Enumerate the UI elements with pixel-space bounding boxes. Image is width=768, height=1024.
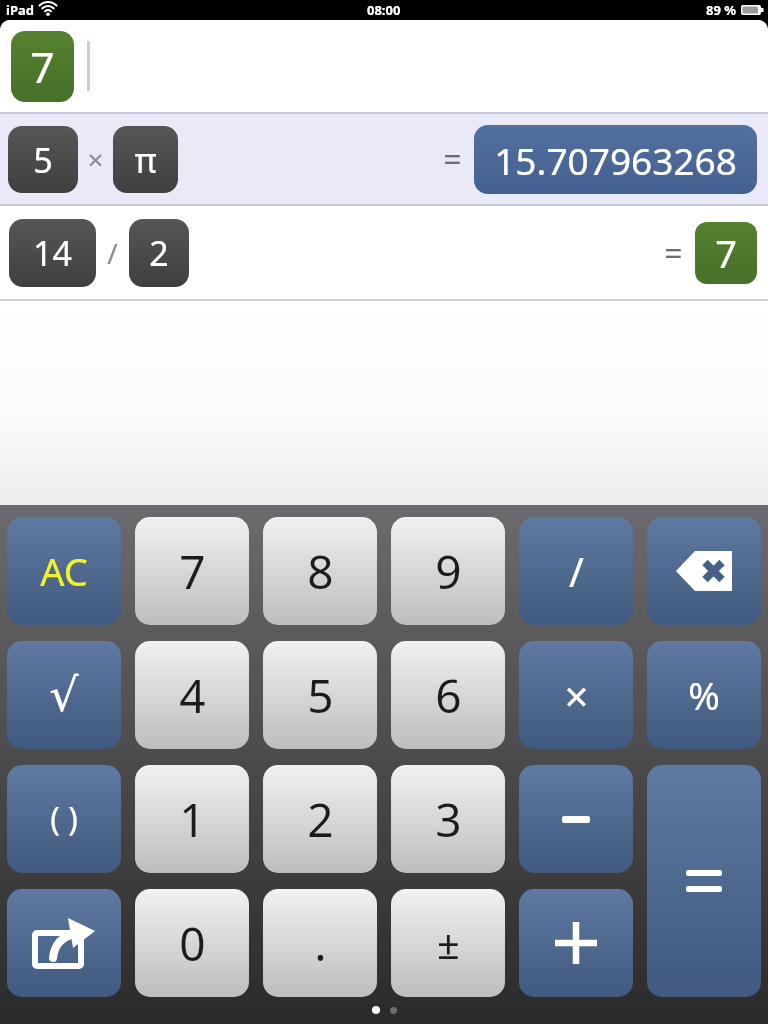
staticText: 6 — [435, 664, 462, 727]
button[interactable]: 4 — [135, 641, 249, 749]
button[interactable]: 2 — [263, 765, 377, 873]
button[interactable]: 1 — [135, 765, 249, 873]
button[interactable]: 15.707963268 — [474, 125, 757, 194]
staticText: × — [87, 140, 104, 178]
staticText: = — [664, 231, 683, 275]
button[interactable]: 7 — [0, 20, 768, 112]
staticText: ± — [437, 916, 460, 970]
button[interactable]: 7 — [695, 222, 757, 284]
button[interactable]: × — [519, 641, 633, 749]
staticText: / — [107, 234, 118, 272]
staticText: 7 — [179, 540, 206, 603]
button[interactable] — [519, 889, 633, 997]
button[interactable] — [647, 765, 761, 997]
staticText: 9 — [435, 540, 462, 603]
button[interactable]: 5 — [263, 641, 377, 749]
staticText: % — [688, 669, 720, 721]
staticText: = — [443, 137, 462, 181]
button[interactable]: 0 — [135, 889, 249, 997]
button[interactable]: % — [647, 641, 761, 749]
staticText: ( ) — [50, 797, 78, 841]
button[interactable] — [519, 765, 633, 873]
button[interactable] — [7, 889, 121, 997]
staticText: 15.707963268 — [494, 135, 737, 185]
staticText: 08:00 — [367, 1, 401, 19]
staticText: 89 % — [706, 1, 736, 19]
button[interactable]: 9 — [391, 517, 505, 625]
button[interactable]: . — [263, 889, 377, 997]
button[interactable] — [647, 517, 761, 625]
button[interactable]: ± — [391, 889, 505, 997]
staticText: 1 — [179, 788, 206, 851]
staticText: iPad — [6, 1, 34, 19]
staticText: 3 — [435, 788, 462, 851]
button[interactable]: 2 — [129, 219, 189, 287]
button[interactable]: √ — [7, 641, 121, 749]
staticText: 8 — [307, 540, 334, 603]
button[interactable]: AC — [7, 517, 121, 625]
staticText: 0 — [179, 912, 206, 975]
staticText: × — [564, 667, 589, 724]
button[interactable]: 14 — [9, 219, 96, 287]
button[interactable]: 5 — [0, 114, 768, 204]
staticText: . — [314, 912, 327, 975]
staticText: AC — [40, 545, 88, 597]
staticText: 2 — [149, 230, 169, 276]
button[interactable]: 7 — [135, 517, 249, 625]
button[interactable]: 6 — [391, 641, 505, 749]
button[interactable]: / — [519, 517, 633, 625]
staticText: √ — [49, 668, 79, 722]
staticText: 2 — [307, 788, 334, 851]
button[interactable]: 3 — [391, 765, 505, 873]
staticText: 5 — [307, 664, 334, 727]
button[interactable]: 14 — [0, 206, 768, 299]
button[interactable]: ( ) — [7, 765, 121, 873]
staticText: 5 — [33, 137, 53, 183]
staticText: 4 — [179, 664, 206, 727]
staticText: 7 — [715, 227, 737, 279]
button[interactable]: π — [113, 126, 178, 193]
button[interactable]: 8 — [263, 517, 377, 625]
button[interactable]: 5 — [8, 126, 78, 193]
staticText: / — [569, 544, 584, 598]
staticText: π — [134, 137, 157, 183]
button[interactable]: 7 — [11, 31, 74, 102]
staticText: 7 — [30, 38, 55, 95]
staticText: 14 — [33, 230, 72, 276]
